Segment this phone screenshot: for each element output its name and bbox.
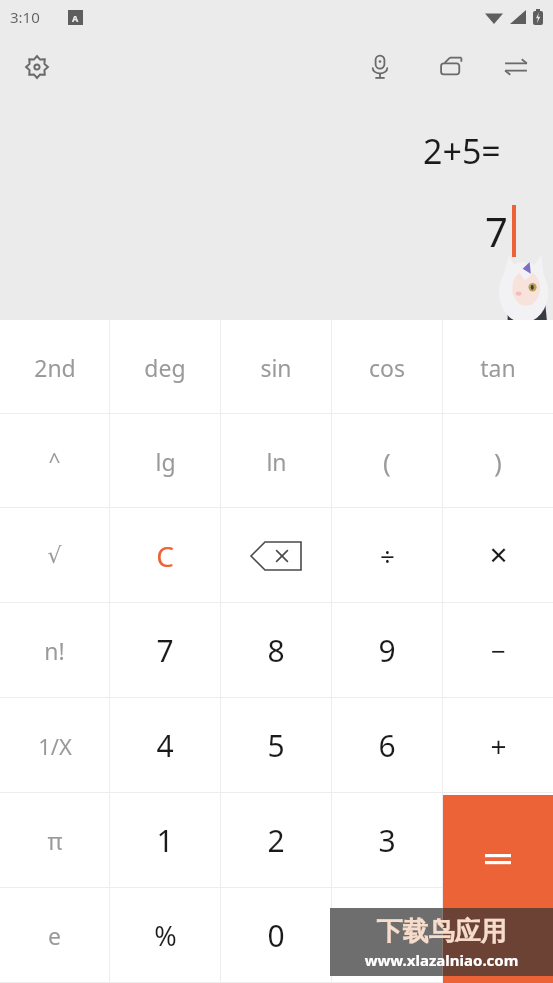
staticText: √ xyxy=(47,543,62,569)
staticText: cos xyxy=(369,352,405,383)
button[interactable]: sin xyxy=(221,320,331,414)
staticText: ^ xyxy=(48,447,61,476)
button[interactable]: 1/X xyxy=(0,698,109,793)
staticText: 9 xyxy=(378,630,396,671)
staticText: www.xlazalniao.com xyxy=(340,950,543,970)
staticText: 0 xyxy=(267,915,285,956)
button[interactable]: % xyxy=(110,888,220,983)
staticText: lg xyxy=(155,446,176,477)
staticText: 下载鸟应用 xyxy=(340,915,543,948)
staticText: ✕ xyxy=(488,542,509,570)
button[interactable]: tan xyxy=(443,320,553,414)
staticText: ln xyxy=(266,446,287,477)
staticText: ) xyxy=(494,444,502,479)
button[interactable]: Equals xyxy=(443,795,553,983)
button[interactable]: Backspace xyxy=(221,508,331,603)
button[interactable]: n! xyxy=(0,603,109,698)
button[interactable]: 0 xyxy=(221,888,331,983)
button[interactable]: 2nd xyxy=(0,320,109,414)
button[interactable]: ✕ xyxy=(443,508,553,603)
button[interactable]: Rotate screen xyxy=(434,50,470,84)
button[interactable]: e xyxy=(0,888,109,983)
button[interactable]: cos xyxy=(332,320,442,414)
staticText: n! xyxy=(44,635,65,666)
button[interactable]: π xyxy=(0,793,109,888)
button[interactable]: 5 xyxy=(221,698,331,793)
button[interactable]: 9 xyxy=(332,603,442,698)
button[interactable]: ( xyxy=(332,414,442,508)
staticText: 3:10 xyxy=(10,7,40,27)
button[interactable]: ) xyxy=(443,414,553,508)
staticText: ÷ xyxy=(380,538,395,573)
button[interactable]: − xyxy=(443,603,553,698)
button[interactable]: Settings xyxy=(20,50,54,84)
staticText: 8 xyxy=(267,630,285,671)
staticText: 5 xyxy=(267,725,285,766)
staticText: π xyxy=(47,825,63,856)
button[interactable]: C xyxy=(110,508,220,603)
staticText: 2 xyxy=(267,820,285,861)
button[interactable]: ^ xyxy=(0,414,109,508)
button[interactable]: ÷ xyxy=(332,508,442,603)
button[interactable]: lg xyxy=(110,414,220,508)
staticText: 7 xyxy=(156,630,174,671)
button[interactable]: + xyxy=(443,698,553,793)
staticText: deg xyxy=(144,352,186,383)
button[interactable]: 8 xyxy=(221,603,331,698)
button[interactable]: 7 xyxy=(110,603,220,698)
staticText: ( xyxy=(383,444,391,479)
staticText: 1/X xyxy=(38,731,72,761)
button[interactable]: √ xyxy=(0,508,109,603)
staticText: + xyxy=(490,727,507,765)
staticText: 2+5= xyxy=(423,128,501,174)
button[interactable]: deg xyxy=(110,320,220,414)
staticText: tan xyxy=(480,352,516,383)
staticText: 4 xyxy=(156,725,174,766)
staticText: C xyxy=(156,537,174,575)
staticText: A xyxy=(72,12,79,24)
button[interactable]: 4 xyxy=(110,698,220,793)
staticText: 2nd xyxy=(34,352,76,383)
staticText: 7 xyxy=(485,204,508,258)
button[interactable]: Swap xyxy=(498,50,534,84)
staticText: 1 xyxy=(156,820,174,861)
button[interactable]: Voice input xyxy=(362,50,398,84)
staticText: 3 xyxy=(378,820,396,861)
staticText: − xyxy=(491,633,506,668)
staticText: % xyxy=(154,917,177,954)
staticText: e xyxy=(48,920,61,951)
button[interactable]: 6 xyxy=(332,698,442,793)
button[interactable]: 2 xyxy=(221,793,331,888)
staticText: 6 xyxy=(378,725,396,766)
button[interactable]: ln xyxy=(221,414,331,508)
button[interactable]: 1 xyxy=(110,793,220,888)
button[interactable]: 3 xyxy=(332,793,442,888)
staticText: sin xyxy=(260,352,292,383)
